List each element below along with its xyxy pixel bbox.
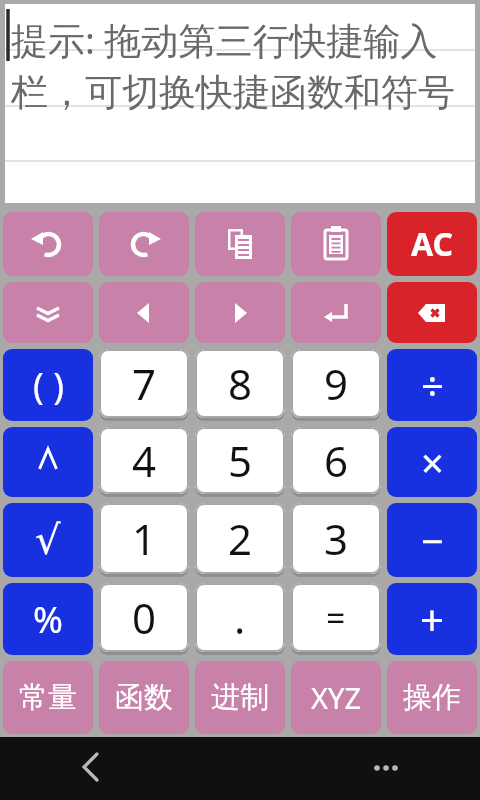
button[interactable]: [3, 427, 93, 497]
button[interactable]: +: [387, 583, 477, 655]
button[interactable]: [3, 212, 93, 276]
staticText: AC: [411, 222, 454, 266]
staticText: 8: [228, 355, 253, 412]
button[interactable]: [3, 282, 93, 343]
staticText: 0: [132, 589, 157, 646]
button[interactable]: [387, 282, 477, 343]
staticText: 9: [324, 355, 349, 412]
staticText: =: [326, 595, 346, 641]
button[interactable]: 6: [291, 427, 381, 494]
button[interactable]: 9: [291, 349, 381, 418]
staticText: +: [420, 591, 445, 648]
button[interactable]: [291, 212, 381, 276]
button[interactable]: 函数: [99, 661, 189, 734]
staticText: √: [35, 517, 61, 564]
button[interactable]: ×: [387, 427, 477, 497]
button[interactable]: 常量: [3, 661, 93, 734]
button[interactable]: [364, 747, 408, 791]
staticText: 提示: 拖动第三行快捷输入: [11, 14, 438, 65]
staticText: 7: [132, 355, 157, 412]
button[interactable]: XYZ: [291, 661, 381, 734]
staticText: 4: [132, 432, 157, 489]
staticText: 5: [228, 432, 253, 489]
button[interactable]: 4: [99, 427, 189, 494]
button[interactable]: 进制: [195, 661, 285, 734]
staticText: 函数: [115, 679, 173, 716]
button[interactable]: −: [387, 503, 477, 577]
staticText: 2: [228, 510, 253, 567]
button[interactable]: 0: [99, 583, 189, 652]
button[interactable]: [195, 282, 285, 343]
button[interactable]: √: [3, 503, 93, 577]
staticText: 1: [132, 510, 157, 567]
staticText: %: [33, 595, 63, 644]
button[interactable]: 1: [99, 503, 189, 574]
button[interactable]: %: [3, 583, 93, 655]
button[interactable]: 3: [291, 503, 381, 574]
button[interactable]: 7: [99, 349, 189, 418]
staticText: ( ): [33, 361, 64, 410]
button[interactable]: [195, 212, 285, 276]
button[interactable]: 5: [195, 427, 285, 494]
button[interactable]: .: [195, 583, 285, 652]
staticText: 3: [324, 510, 349, 567]
staticText: XYZ: [311, 678, 361, 717]
button[interactable]: ÷: [387, 349, 477, 421]
button[interactable]: =: [291, 583, 381, 652]
button[interactable]: [291, 282, 381, 343]
staticText: 6: [324, 432, 349, 489]
button[interactable]: AC: [387, 212, 477, 276]
staticText: 常量: [19, 679, 77, 716]
button[interactable]: [70, 747, 114, 791]
staticText: 进制: [211, 679, 269, 716]
staticText: −: [421, 513, 444, 567]
staticText: 操作: [403, 679, 461, 716]
staticText: 栏，可切换快捷函数和符号: [11, 69, 455, 116]
button[interactable]: [99, 212, 189, 276]
button[interactable]: ( ): [3, 349, 93, 421]
button[interactable]: 2: [195, 503, 285, 574]
button[interactable]: 8: [195, 349, 285, 418]
staticText: .: [234, 589, 246, 646]
button[interactable]: 操作: [387, 661, 477, 734]
button[interactable]: [99, 282, 189, 343]
staticText: ÷: [421, 358, 444, 412]
staticText: ×: [421, 435, 444, 489]
